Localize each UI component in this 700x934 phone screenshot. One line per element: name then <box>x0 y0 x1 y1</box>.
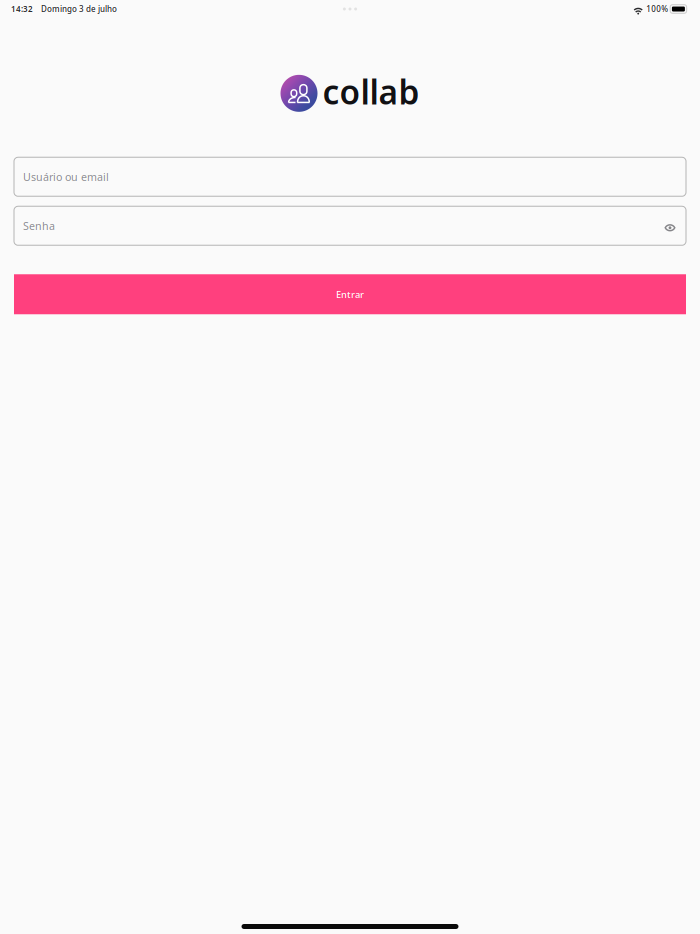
staticText: 14:32 <box>11 4 33 14</box>
button[interactable]: Usuário ou email <box>14 157 686 196</box>
button[interactable]: Senha <box>14 206 686 245</box>
staticText: 100% <box>646 4 668 14</box>
staticText: Usuário ou email <box>23 170 109 184</box>
button[interactable]: Entrar <box>14 274 686 314</box>
staticText: collab <box>322 69 419 114</box>
staticText: Entrar <box>336 288 364 300</box>
staticText: Senha <box>23 219 55 233</box>
staticText: Domingo 3 de julho <box>41 4 117 14</box>
